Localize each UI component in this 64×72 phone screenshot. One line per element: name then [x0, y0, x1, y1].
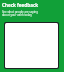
staticText: Check feedback	[2, 2, 39, 8]
staticText: See what people are saying about your wo…	[2, 10, 38, 17]
